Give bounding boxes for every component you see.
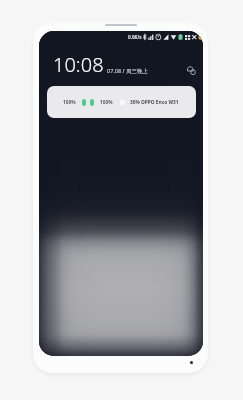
button[interactable]: 100% [47, 86, 196, 118]
staticText: 100% [63, 99, 76, 106]
staticText: 0.6K/s [128, 34, 142, 40]
staticText: 30% OPPO Enco W31 [130, 99, 179, 106]
staticText: 10:08 [53, 51, 104, 78]
staticText: 07.08 / 周三晚上 [107, 67, 148, 75]
button[interactable]: Do not disturb [184, 63, 198, 77]
staticText: 100% [100, 99, 113, 106]
